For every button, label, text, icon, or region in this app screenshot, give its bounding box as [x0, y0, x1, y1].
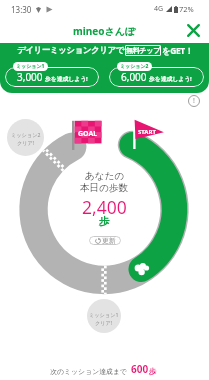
staticText: クリア!	[95, 319, 113, 326]
staticText: あなたの	[85, 170, 125, 182]
button[interactable]: Information	[188, 95, 200, 107]
staticText: ミッション2	[120, 63, 149, 70]
staticText: 2,400	[82, 195, 127, 219]
staticText: START	[138, 128, 156, 136]
button[interactable]: 3,000	[5, 67, 99, 87]
button[interactable]: 更新	[89, 236, 121, 245]
button[interactable]: ミッション2	[7, 119, 44, 156]
button[interactable]: デイリーミッションクリアで	[0, 43, 209, 58]
staticText: デイリーミッションクリアで	[17, 45, 124, 56]
button[interactable]: Close	[187, 24, 200, 37]
staticText: ミッション1	[89, 311, 119, 318]
button[interactable]: 6,000	[109, 67, 204, 87]
staticText: 13:30	[11, 4, 32, 15]
staticText: ミッション1	[16, 63, 45, 70]
staticText: !	[193, 96, 195, 106]
staticText: 無料チップ	[126, 46, 160, 55]
staticText: 歩を達成しよう!	[45, 75, 88, 83]
staticText: クリア!	[17, 139, 35, 146]
staticText: 600	[131, 362, 149, 376]
staticText: 6,000	[121, 70, 147, 84]
staticText: ミッション2	[11, 131, 41, 138]
staticText: 歩を達成しよう!	[149, 75, 192, 83]
staticText: 更新	[102, 236, 116, 245]
staticText: mineoさんぽ	[73, 24, 136, 38]
button[interactable]: ミッション1	[87, 299, 121, 333]
staticText: 歩	[99, 215, 110, 228]
staticText: 本日の歩数	[80, 182, 129, 194]
staticText: 4G	[154, 4, 164, 14]
staticText: 次のミッション達成まで	[50, 367, 128, 376]
staticText: 歩	[149, 367, 157, 376]
staticText: をGET！	[162, 45, 193, 56]
staticText: 72%	[179, 4, 194, 14]
staticText: GOAL	[78, 129, 98, 139]
staticText: 3,000	[17, 70, 43, 84]
